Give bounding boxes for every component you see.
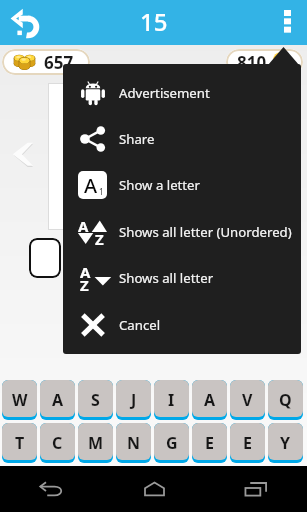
staticText: C <box>52 432 63 454</box>
staticText: Shows all letter <box>119 269 214 287</box>
button[interactable]: Cancel <box>63 302 301 348</box>
button[interactable]: G <box>154 423 189 463</box>
staticText: 810 <box>237 51 267 74</box>
staticText: Shows all letter (Unordered) <box>119 223 292 241</box>
button[interactable]: A <box>63 162 301 208</box>
staticText: A <box>84 172 98 199</box>
staticText: Share <box>119 130 155 148</box>
button[interactable]: I <box>154 380 189 420</box>
button[interactable]: T <box>2 423 37 463</box>
button[interactable]: J <box>116 380 151 420</box>
staticText: J <box>131 389 137 411</box>
staticText: N <box>127 432 141 454</box>
staticText: Show a letter <box>119 176 200 194</box>
staticText: Advertisement <box>119 84 210 102</box>
button[interactable]: Y <box>268 423 303 463</box>
staticText: G <box>166 432 178 454</box>
button[interactable]: 657 <box>2 49 90 75</box>
button[interactable]: S <box>78 380 113 420</box>
button[interactable]: M <box>78 423 113 463</box>
button[interactable]: C <box>40 423 75 463</box>
button[interactable]: A <box>63 255 301 301</box>
button[interactable]: More options <box>267 0 307 45</box>
staticText: A <box>52 389 64 411</box>
button[interactable]: A <box>40 380 75 420</box>
button[interactable]: V <box>230 380 265 420</box>
staticText: Q <box>279 389 292 411</box>
button[interactable]: Recents <box>205 466 307 512</box>
staticText: Z <box>95 229 104 249</box>
staticText: A <box>78 216 89 236</box>
button[interactable]: Advertisement <box>63 70 301 116</box>
button[interactable]: 810 <box>226 49 303 75</box>
staticText: A <box>80 262 91 282</box>
button[interactable]: Share <box>63 116 301 162</box>
staticText: A <box>204 389 216 411</box>
staticText: E <box>243 432 252 454</box>
staticText: 657 <box>44 51 74 74</box>
staticText: M <box>88 432 104 454</box>
button[interactable]: Previous <box>8 138 40 174</box>
staticText: V <box>242 389 253 411</box>
button[interactable]: A <box>63 209 301 255</box>
staticText: E <box>205 432 214 454</box>
button[interactable]: Home <box>103 466 205 512</box>
staticText: 1 <box>99 186 104 197</box>
staticText: S <box>91 389 100 411</box>
button[interactable]: A <box>192 380 227 420</box>
staticText: T <box>15 432 25 454</box>
button[interactable]: E <box>192 423 227 463</box>
staticText: 15 <box>140 5 168 38</box>
staticText: Z <box>80 275 89 295</box>
staticText: Cancel <box>119 316 161 334</box>
staticText: I <box>168 389 175 411</box>
button[interactable]: E <box>230 423 265 463</box>
staticText: W <box>12 389 28 411</box>
button[interactable]: Back <box>0 466 103 512</box>
button[interactable]: Undo <box>0 0 48 45</box>
button[interactable]: Q <box>268 380 303 420</box>
button[interactable]: N <box>116 423 151 463</box>
staticText: Y <box>280 432 291 454</box>
button[interactable]: W <box>2 380 37 420</box>
